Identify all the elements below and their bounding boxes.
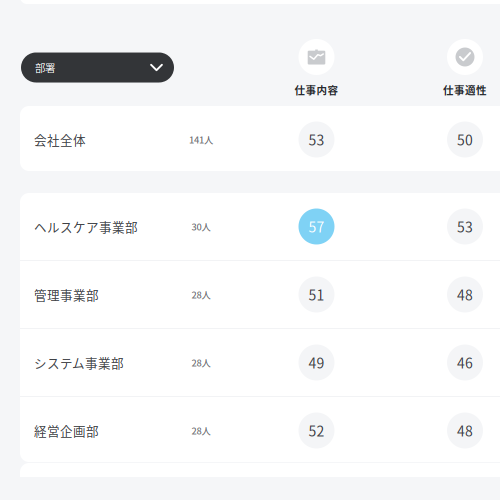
- staticText: 49: [308, 352, 324, 373]
- staticText: 141人: [189, 133, 213, 146]
- button[interactable]: 経営企画部: [20, 397, 500, 464]
- staticText: ヘルスケア事業部: [34, 217, 138, 235]
- staticText: 53: [308, 129, 324, 150]
- staticText: 52: [308, 420, 324, 441]
- staticText: 28人: [191, 424, 210, 437]
- staticText: 28人: [191, 288, 210, 301]
- staticText: 53: [457, 216, 473, 237]
- staticText: 50: [457, 129, 473, 150]
- staticText: システム事業部: [34, 353, 124, 371]
- staticText: 46: [457, 352, 473, 373]
- staticText: 管理事業部: [34, 285, 99, 303]
- staticText: 30人: [191, 220, 210, 233]
- button[interactable]: 会社全体: [20, 106, 500, 173]
- staticText: 28人: [191, 356, 210, 369]
- button[interactable]: システム事業部: [20, 329, 500, 396]
- staticText: 仕事内容: [294, 82, 338, 97]
- staticText: 48: [457, 420, 473, 441]
- staticText: 仕事適性: [443, 82, 487, 97]
- button[interactable]: ヘルスケア事業部: [20, 193, 500, 260]
- staticText: 57: [308, 216, 324, 237]
- button[interactable]: 管理事業部: [20, 261, 500, 328]
- button[interactable]: 部署: [21, 52, 174, 82]
- staticText: 48: [457, 284, 473, 305]
- staticText: 51: [308, 284, 324, 305]
- staticText: 会社全体: [34, 130, 86, 148]
- staticText: 経営企画部: [34, 421, 99, 439]
- staticText: 部署: [35, 60, 55, 75]
